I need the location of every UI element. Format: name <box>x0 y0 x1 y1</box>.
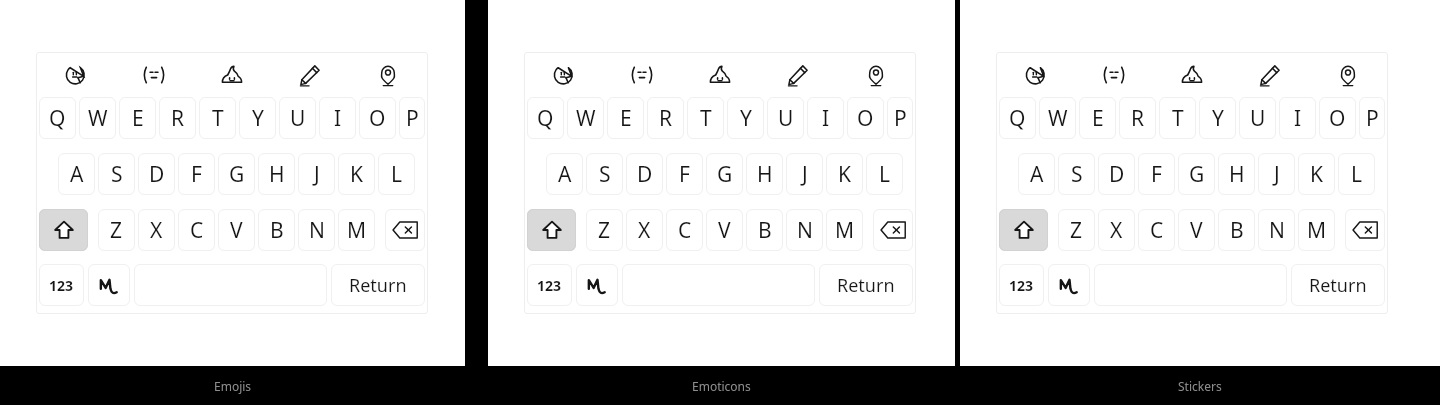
button[interactable]: Draw <box>761 56 835 94</box>
button[interactable]: X <box>1098 209 1135 251</box>
button[interactable]: L <box>1338 153 1375 195</box>
button[interactable]: V <box>1178 209 1215 251</box>
button[interactable]: T <box>199 97 236 139</box>
button[interactable]: O <box>847 97 884 139</box>
button[interactable]: G <box>1178 153 1215 195</box>
button[interactable]: V <box>218 209 255 251</box>
button[interactable]: Z <box>1058 209 1095 251</box>
button[interactable]: M <box>826 209 863 251</box>
button[interactable]: S <box>586 153 623 195</box>
button[interactable]: Handwriting <box>88 264 130 306</box>
button[interactable]: Backspace <box>385 209 425 251</box>
button[interactable]: Sticker <box>527 56 601 94</box>
button[interactable]: V <box>706 209 743 251</box>
button[interactable]: Location <box>839 56 913 94</box>
button[interactable]: F <box>666 153 703 195</box>
button[interactable]: I <box>1279 97 1316 139</box>
button[interactable]: Q <box>999 97 1036 139</box>
button[interactable]: Emoji <box>195 56 269 94</box>
button[interactable]: 123 <box>527 264 572 306</box>
button[interactable]: B <box>746 209 783 251</box>
button[interactable]: I <box>807 97 844 139</box>
button[interactable]: N <box>786 209 823 251</box>
button[interactable]: Space <box>134 264 327 306</box>
button[interactable]: X <box>138 209 175 251</box>
button[interactable]: C <box>178 209 215 251</box>
button[interactable]: W <box>1039 97 1076 139</box>
button[interactable]: Return <box>1291 264 1385 306</box>
button[interactable]: Q <box>527 97 564 139</box>
button[interactable]: Location <box>1311 56 1385 94</box>
button[interactable]: O <box>359 97 396 139</box>
button[interactable]: C <box>1138 209 1175 251</box>
button[interactable]: H <box>1218 153 1255 195</box>
button[interactable]: C <box>666 209 703 251</box>
button[interactable]: O <box>1319 97 1356 139</box>
button[interactable]: Backspace <box>873 209 913 251</box>
button[interactable]: F <box>1138 153 1175 195</box>
button[interactable]: P <box>887 97 913 139</box>
button[interactable]: D <box>626 153 663 195</box>
button[interactable]: Backspace <box>1345 209 1385 251</box>
button[interactable]: M <box>1298 209 1335 251</box>
button[interactable]: Return <box>819 264 913 306</box>
button[interactable]: E <box>119 97 156 139</box>
button[interactable]: U <box>279 97 316 139</box>
button[interactable]: K <box>1298 153 1335 195</box>
button[interactable]: J <box>1258 153 1295 195</box>
button[interactable]: A <box>58 153 95 195</box>
button[interactable]: L <box>378 153 415 195</box>
button[interactable]: S <box>98 153 135 195</box>
button[interactable]: Y <box>1199 97 1236 139</box>
button[interactable]: N <box>1258 209 1295 251</box>
button[interactable]: Emoji <box>683 56 757 94</box>
button[interactable]: Sticker <box>39 56 113 94</box>
button[interactable]: J <box>298 153 335 195</box>
button[interactable]: Emoticon <box>117 56 191 94</box>
button[interactable]: B <box>258 209 295 251</box>
button[interactable]: Handwriting <box>576 264 618 306</box>
button[interactable]: Draw <box>1233 56 1307 94</box>
button[interactable]: Y <box>727 97 764 139</box>
button[interactable]: A <box>546 153 583 195</box>
button[interactable]: A <box>1018 153 1055 195</box>
button[interactable]: U <box>1239 97 1276 139</box>
button[interactable]: T <box>1159 97 1196 139</box>
button[interactable]: Z <box>586 209 623 251</box>
button[interactable]: 123 <box>39 264 84 306</box>
button[interactable]: T <box>687 97 724 139</box>
button[interactable]: E <box>1079 97 1116 139</box>
button[interactable]: Handwriting <box>1048 264 1090 306</box>
button[interactable]: Emoji <box>1155 56 1229 94</box>
button[interactable]: L <box>866 153 903 195</box>
button[interactable]: I <box>319 97 356 139</box>
button[interactable]: P <box>399 97 425 139</box>
button[interactable]: S <box>1058 153 1095 195</box>
button[interactable]: D <box>1098 153 1135 195</box>
button[interactable]: W <box>567 97 604 139</box>
button[interactable]: H <box>258 153 295 195</box>
button[interactable]: W <box>79 97 116 139</box>
button[interactable]: Emoticon <box>1077 56 1151 94</box>
button[interactable]: J <box>786 153 823 195</box>
button[interactable]: R <box>1119 97 1156 139</box>
button[interactable]: R <box>159 97 196 139</box>
button[interactable]: Shift <box>39 209 88 251</box>
button[interactable]: 123 <box>999 264 1044 306</box>
button[interactable]: F <box>178 153 215 195</box>
button[interactable]: Emoticon <box>605 56 679 94</box>
button[interactable]: Z <box>98 209 135 251</box>
button[interactable]: X <box>626 209 663 251</box>
button[interactable]: Return <box>331 264 425 306</box>
button[interactable]: R <box>647 97 684 139</box>
button[interactable]: M <box>338 209 375 251</box>
button[interactable]: N <box>298 209 335 251</box>
button[interactable]: H <box>746 153 783 195</box>
button[interactable]: Y <box>239 97 276 139</box>
button[interactable]: Sticker <box>999 56 1073 94</box>
button[interactable]: Space <box>1094 264 1287 306</box>
button[interactable]: Shift <box>999 209 1048 251</box>
button[interactable]: Shift <box>527 209 576 251</box>
button[interactable]: G <box>218 153 255 195</box>
button[interactable]: B <box>1218 209 1255 251</box>
